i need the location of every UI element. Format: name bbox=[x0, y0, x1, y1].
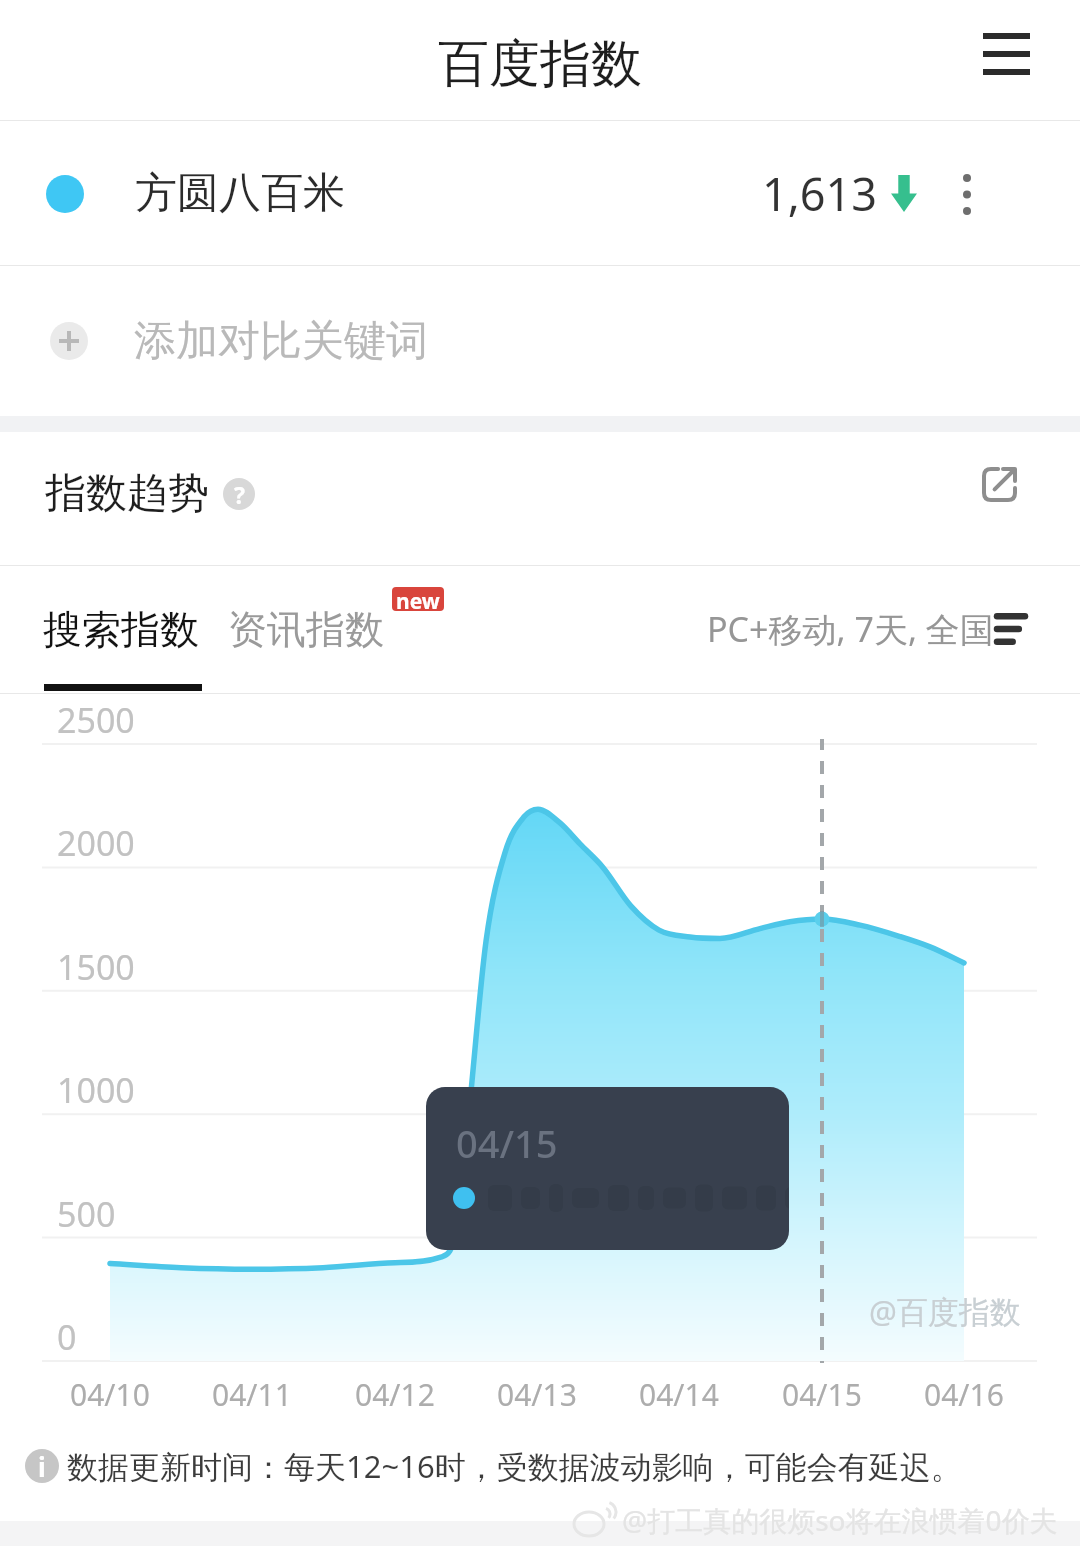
staticText: 04/12 bbox=[355, 1374, 435, 1415]
staticText: @百度指数 bbox=[869, 1290, 1021, 1332]
staticText: 2000 bbox=[57, 820, 135, 866]
staticText: 1000 bbox=[57, 1067, 135, 1113]
button[interactable]: Help bbox=[223, 478, 255, 510]
staticText: PC+移动, 7天, 全国 bbox=[707, 606, 994, 652]
staticText: 04/14 bbox=[639, 1374, 719, 1415]
staticText: 04/16 bbox=[924, 1374, 1004, 1415]
button[interactable]: Menu bbox=[959, 16, 1054, 92]
staticText: 04/13 bbox=[497, 1374, 577, 1415]
button[interactable]: Open in full screen bbox=[963, 448, 1035, 520]
staticText: @打工真的很烦so将在浪惯着0价夫 bbox=[622, 1501, 1058, 1539]
staticText: 资讯指数 bbox=[228, 605, 384, 654]
button[interactable]: 搜索指数 bbox=[43, 574, 199, 684]
button[interactable]: More options bbox=[929, 149, 1005, 239]
staticText: 2500 bbox=[57, 697, 135, 743]
staticText: 方圆八百米 bbox=[135, 167, 345, 220]
staticText: ? bbox=[234, 479, 245, 510]
staticText: 1,613 bbox=[762, 163, 878, 224]
staticText: 百度指数 bbox=[438, 32, 642, 96]
button[interactable]: 方圆八百米 bbox=[0, 121, 1080, 266]
staticText: new bbox=[396, 587, 440, 611]
staticText: 04/15 bbox=[456, 1117, 558, 1169]
button[interactable]: PC+移动, 7天, 全国 bbox=[707, 579, 1025, 679]
staticText: 指数趋势 bbox=[45, 468, 209, 520]
staticText: 0 bbox=[57, 1314, 77, 1360]
staticText: 04/11 bbox=[212, 1374, 292, 1415]
staticText: 数据更新时间：每天12~16时，受数据波动影响，可能会有延迟。 bbox=[67, 1445, 962, 1487]
staticText: 500 bbox=[57, 1191, 116, 1237]
staticText: i bbox=[38, 1449, 46, 1483]
button[interactable]: 添加对比关键词 bbox=[0, 266, 1080, 416]
staticText: 04/15 bbox=[782, 1374, 862, 1415]
button[interactable]: 资讯指数 bbox=[228, 574, 384, 684]
staticText: 搜索指数 bbox=[43, 605, 199, 654]
staticText: 添加对比关键词 bbox=[134, 315, 428, 368]
staticText: 04/10 bbox=[70, 1374, 150, 1415]
staticText: 1500 bbox=[57, 944, 135, 990]
